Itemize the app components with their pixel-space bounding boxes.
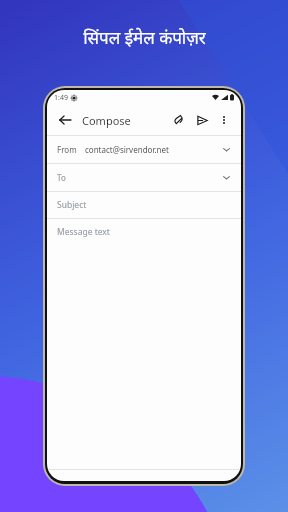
button[interactable]: Subject xyxy=(47,192,241,219)
staticText: contact@sirvendor.net xyxy=(85,144,169,155)
button[interactable]: Send xyxy=(192,110,212,130)
button[interactable]: Attach file xyxy=(168,110,188,130)
staticText: To xyxy=(57,172,66,183)
staticText: Subject xyxy=(57,199,87,211)
staticText: 1:49 xyxy=(54,93,68,103)
staticText: Compose xyxy=(82,113,131,128)
button[interactable]: Back xyxy=(55,110,75,130)
button[interactable]: To xyxy=(47,164,241,192)
button[interactable]: Message text xyxy=(47,219,241,245)
staticText: सिंपल ईमेल कंपोज़र xyxy=(83,26,206,49)
staticText: Message text xyxy=(57,226,110,238)
staticText: From xyxy=(57,144,77,155)
button[interactable]: More options xyxy=(215,111,233,129)
button[interactable]: From xyxy=(47,135,241,164)
